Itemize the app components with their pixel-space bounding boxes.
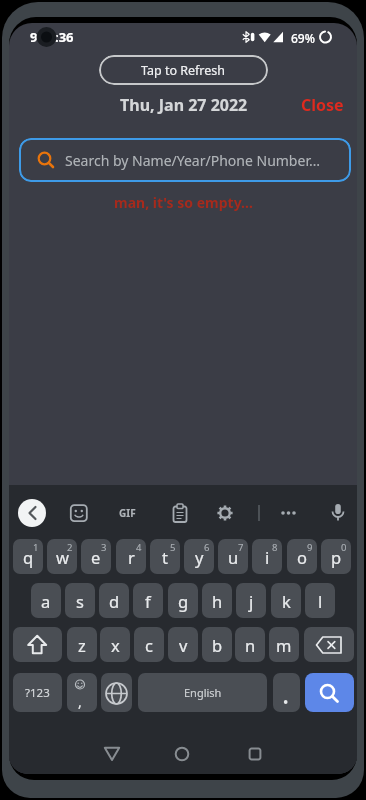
button[interactable]: x <box>100 627 130 662</box>
staticText: :36 <box>55 28 74 46</box>
button[interactable] <box>167 501 193 527</box>
staticText: Thu, Jan 27 2022 <box>120 94 248 116</box>
staticText: j <box>249 590 254 612</box>
button[interactable] <box>167 739 197 767</box>
button[interactable]: v <box>168 627 198 662</box>
button[interactable]: GIF <box>113 504 141 522</box>
button[interactable]: i <box>252 539 282 574</box>
staticText: 1 <box>33 541 39 554</box>
button[interactable]: s <box>65 583 95 618</box>
button[interactable] <box>304 627 354 662</box>
staticText: m <box>276 634 292 656</box>
button[interactable]: t <box>150 539 180 574</box>
button[interactable]: ?123 <box>13 673 62 712</box>
staticText: 9 <box>30 28 38 46</box>
button[interactable] <box>97 739 127 767</box>
staticText: 5 <box>170 541 176 554</box>
button[interactable]: Search by Name/Year/Phone Number… <box>19 138 351 182</box>
button[interactable]: j <box>236 583 266 618</box>
button[interactable]: z <box>67 627 97 662</box>
button[interactable]: o <box>287 539 317 574</box>
staticText: x <box>111 634 120 656</box>
staticText: r <box>128 546 135 568</box>
button[interactable] <box>240 739 270 767</box>
staticText: Tap to Refresh <box>141 62 226 79</box>
button[interactable]: Tap to Refresh <box>99 55 268 85</box>
staticText: ?123 <box>25 685 50 701</box>
button[interactable]: l <box>305 583 335 618</box>
staticText: 7 <box>238 541 244 554</box>
button[interactable]: d <box>99 583 129 618</box>
staticText: g <box>178 590 189 612</box>
staticText: 6 <box>204 541 210 554</box>
button[interactable] <box>273 673 300 712</box>
button[interactable] <box>101 673 132 712</box>
staticText: i <box>265 546 270 568</box>
staticText: 0 <box>341 541 347 554</box>
button[interactable]: y <box>184 539 214 574</box>
staticText: 9 <box>307 541 313 554</box>
staticText: 2 <box>67 541 73 554</box>
staticText: 69% <box>291 30 315 46</box>
staticText: v <box>179 634 188 656</box>
staticText: l <box>318 590 323 612</box>
button[interactable]: w <box>47 539 77 574</box>
button[interactable] <box>212 501 238 527</box>
staticText: f <box>145 590 151 612</box>
button[interactable] <box>65 501 91 527</box>
staticText: a <box>41 590 51 612</box>
button[interactable]: r <box>116 539 146 574</box>
staticText: p <box>331 546 342 568</box>
staticText: c <box>145 634 153 656</box>
staticText: 4 <box>136 541 142 554</box>
button[interactable]: f <box>133 583 163 618</box>
button[interactable]: n <box>235 627 265 662</box>
button[interactable]: Close <box>292 94 352 116</box>
button[interactable]: e <box>81 539 111 574</box>
staticText: d <box>109 590 120 612</box>
button[interactable] <box>67 673 97 712</box>
button[interactable] <box>305 673 354 712</box>
staticText: 8 <box>272 541 278 554</box>
staticText: Close <box>301 94 344 116</box>
staticText: w <box>56 546 69 568</box>
staticText: h <box>212 590 223 612</box>
button[interactable]: c <box>134 627 164 662</box>
staticText: s <box>76 590 84 612</box>
staticText: k <box>282 590 291 612</box>
button[interactable] <box>18 499 46 527</box>
button[interactable]: m <box>269 627 299 662</box>
staticText: man, it's so empty… <box>114 193 254 212</box>
staticText: t <box>162 546 168 568</box>
button[interactable]: u <box>218 539 248 574</box>
staticText: o <box>297 546 307 568</box>
staticText: z <box>78 634 86 656</box>
staticText: n <box>245 634 256 656</box>
button[interactable] <box>275 501 301 527</box>
button[interactable]: a <box>31 583 61 618</box>
staticText: 3 <box>101 541 107 554</box>
staticText: u <box>228 546 239 568</box>
staticText: English <box>184 685 222 700</box>
button[interactable]: q <box>13 539 43 574</box>
button[interactable] <box>13 627 62 662</box>
button[interactable]: g <box>168 583 198 618</box>
staticText: e <box>91 546 101 568</box>
button[interactable]: h <box>202 583 232 618</box>
button[interactable]: k <box>271 583 301 618</box>
staticText: , <box>78 692 82 711</box>
staticText: q <box>23 546 34 568</box>
button[interactable] <box>325 501 351 527</box>
button[interactable]: English <box>138 673 267 712</box>
staticText: GIF <box>119 506 136 520</box>
staticText: Search by Name/Year/Phone Number… <box>65 151 320 170</box>
staticText: b <box>212 634 223 656</box>
button[interactable]: b <box>202 627 232 662</box>
button[interactable]: p <box>321 539 351 574</box>
staticText: y <box>195 546 204 568</box>
